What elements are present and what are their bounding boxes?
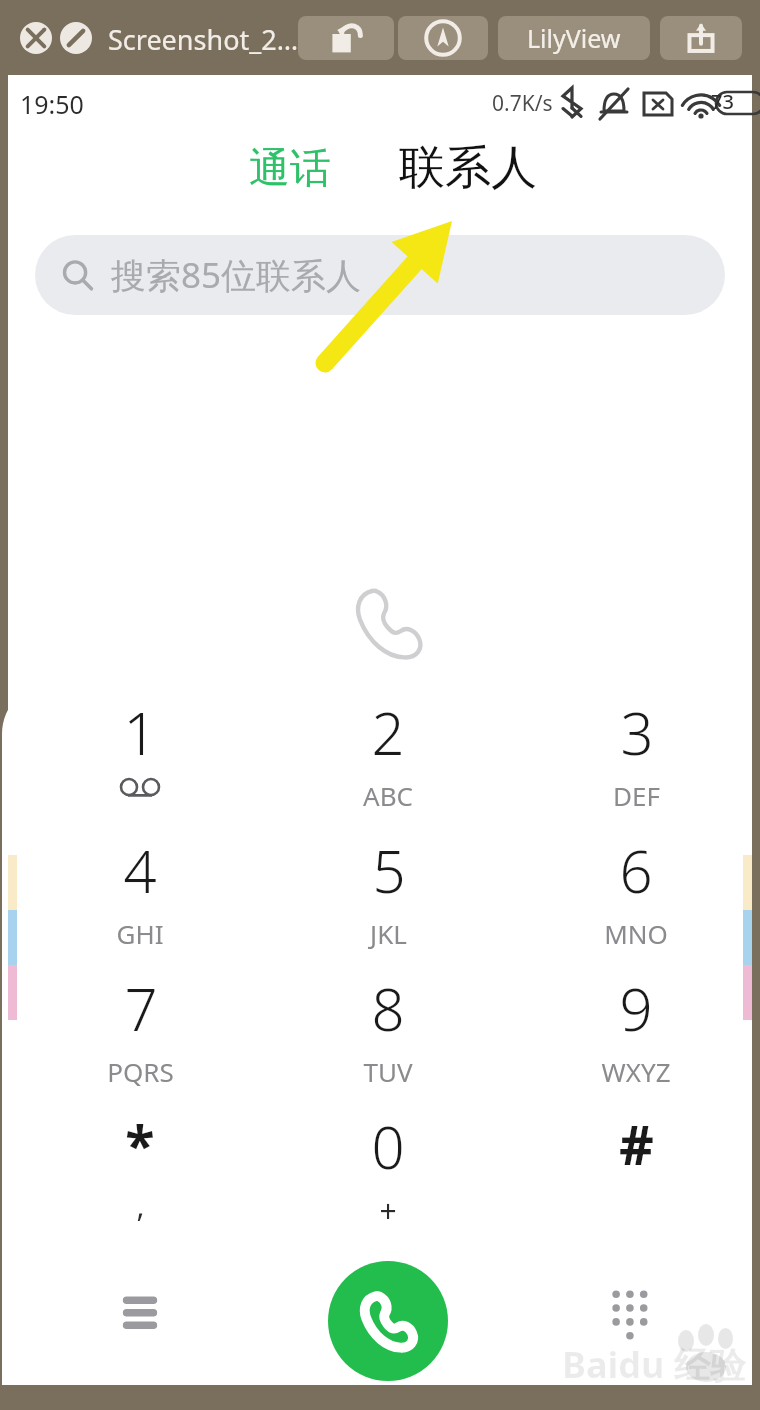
staticText: 2 bbox=[371, 693, 405, 772]
staticText: DEF bbox=[613, 778, 660, 813]
button[interactable]: 3 bbox=[536, 693, 736, 823]
button[interactable]: Call log menu bbox=[80, 1249, 200, 1369]
staticText: jingyan.baidu.com bbox=[564, 1380, 746, 1385]
button[interactable]: 4 bbox=[40, 831, 240, 961]
button[interactable]: # bbox=[536, 1107, 736, 1237]
button[interactable]: 1 bbox=[40, 693, 240, 823]
button[interactable]: 7 bbox=[40, 969, 240, 1099]
button[interactable]: Toolbar action bbox=[660, 16, 742, 60]
staticText: 9 bbox=[619, 969, 653, 1048]
button[interactable]: 8 bbox=[288, 969, 488, 1099]
button[interactable]: Toolbar action bbox=[398, 16, 488, 60]
staticText: ABC bbox=[363, 778, 413, 813]
staticText: 搜索85位联系人 bbox=[111, 251, 362, 299]
staticText: 0 bbox=[371, 1107, 405, 1186]
staticText: 73 bbox=[711, 88, 734, 115]
staticText: 5 bbox=[372, 831, 406, 910]
staticText: PQRS bbox=[107, 1054, 174, 1089]
button[interactable]: LilyView bbox=[498, 16, 650, 60]
button[interactable]: 6 bbox=[536, 831, 736, 961]
staticText: * bbox=[125, 1107, 155, 1181]
button[interactable]: 0 bbox=[288, 1107, 488, 1237]
button[interactable]: 5 bbox=[288, 831, 488, 961]
staticText: 19:50 bbox=[20, 87, 84, 121]
staticText: + bbox=[379, 1190, 397, 1231]
staticText: 6 bbox=[619, 831, 653, 910]
staticText: GHI bbox=[116, 916, 164, 951]
staticText: LilyView bbox=[527, 21, 621, 55]
button[interactable]: * bbox=[40, 1107, 240, 1237]
staticText: MNO bbox=[604, 916, 668, 951]
staticText: 4 bbox=[123, 831, 157, 910]
button[interactable]: Block bbox=[60, 22, 92, 54]
staticText: 0.7K/s bbox=[492, 89, 553, 118]
button[interactable]: 联系人 bbox=[390, 133, 546, 203]
button[interactable]: Toolbar action bbox=[298, 16, 394, 60]
staticText: 通话 bbox=[249, 143, 331, 195]
staticText: 3 bbox=[620, 693, 654, 772]
staticText: 1 bbox=[123, 693, 157, 772]
staticText: 8 bbox=[371, 969, 405, 1048]
button[interactable]: 搜索85位联系人 bbox=[35, 235, 725, 315]
staticText: Screenshot_2… bbox=[108, 21, 299, 58]
button[interactable]: 9 bbox=[536, 969, 736, 1099]
button[interactable]: Hide keypad bbox=[569, 1249, 689, 1369]
staticText: , bbox=[136, 1185, 145, 1226]
staticText: TUV bbox=[363, 1054, 413, 1089]
staticText: JKL bbox=[370, 916, 407, 951]
button[interactable]: 2 bbox=[288, 693, 488, 823]
staticText: 7 bbox=[124, 969, 158, 1048]
staticText: 联系人 bbox=[399, 139, 537, 197]
staticText: Baidu 经验 bbox=[562, 1340, 746, 1385]
button[interactable]: Close bbox=[20, 22, 52, 54]
button[interactable]: 通话 bbox=[226, 137, 354, 201]
button[interactable]: Call bbox=[328, 1261, 448, 1381]
staticText: WXYZ bbox=[601, 1054, 671, 1089]
staticText: # bbox=[619, 1107, 654, 1181]
